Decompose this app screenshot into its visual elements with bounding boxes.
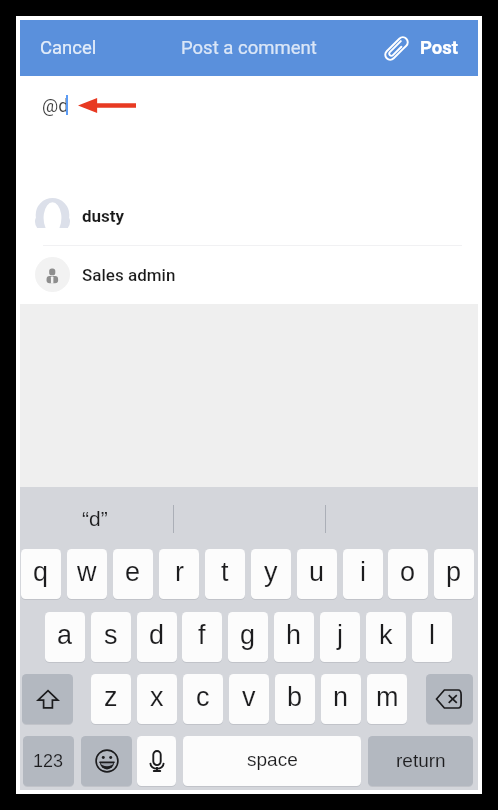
button[interactable]: n [321,674,361,724]
button[interactable]: l [412,612,452,662]
button[interactable]: 123 [23,736,74,786]
button[interactable]: dusty [20,186,478,245]
button[interactable]: a [45,612,85,662]
staticText: space [247,749,298,770]
button[interactable]: m [367,674,407,724]
staticText: e [125,557,141,587]
button[interactable]: q [21,549,61,599]
button[interactable]: Sales admin [20,245,478,304]
staticText: r [175,557,184,587]
staticText: l [429,620,435,650]
staticText: @d [42,95,69,116]
staticText: 123 [33,751,64,771]
staticText: m [376,682,399,712]
staticText: Cancel [40,37,97,59]
staticText: dusty [82,206,125,226]
staticText: t [221,557,229,587]
button[interactable]: Cancel [32,28,105,68]
button[interactable]: Attach file [378,27,466,69]
button[interactable]: x [137,674,177,724]
button[interactable]: g [228,612,268,662]
staticText: j [337,620,343,650]
button[interactable]: j [320,612,360,662]
button[interactable]: “d” [20,487,173,549]
button[interactable]: p [434,549,474,599]
button[interactable]: u [297,549,337,599]
button[interactable]: h [274,612,314,662]
staticText: s [104,620,118,650]
staticText: n [333,682,349,712]
button[interactable]: i [343,549,383,599]
staticText: c [196,682,210,712]
button[interactable]: d [137,612,177,662]
button[interactable]: Dictate [137,736,176,786]
button[interactable]: w [67,549,107,599]
button[interactable]: y [251,549,291,599]
button[interactable]: k [366,612,406,662]
staticText: i [360,557,366,587]
staticText: w [77,557,97,587]
staticText: d [149,620,165,650]
staticText: Post a comment [181,37,317,59]
button[interactable]: e [113,549,153,599]
button[interactable]: b [275,674,315,724]
staticText: “d” [82,507,108,530]
other: Attach file [385,38,408,59]
button[interactable]: f [182,612,222,662]
staticText: z [104,682,118,712]
button[interactable]: o [388,549,428,599]
staticText: a [57,620,73,650]
staticText: f [198,620,206,650]
button[interactable]: z [91,674,131,724]
staticText: q [33,557,49,587]
staticText: x [150,682,164,712]
staticText: return [396,750,446,771]
staticText: h [286,620,302,650]
button[interactable]: t [205,549,245,599]
staticText: o [400,557,416,587]
staticText: u [309,557,325,587]
button[interactable]: Emoji [81,736,132,786]
staticText: y [264,557,278,587]
staticText: v [242,682,256,712]
staticText: b [287,682,303,712]
button[interactable]: r [159,549,199,599]
button[interactable]: return [368,736,473,786]
staticText: k [379,620,393,650]
button[interactable]: Shift [22,674,73,724]
staticText: g [240,620,256,650]
staticText: p [446,557,462,587]
staticText: Post [420,37,459,59]
staticText: Sales admin [82,265,176,285]
button[interactable]: c [183,674,223,724]
button[interactable]: space [183,736,361,786]
button[interactable]: Backspace [426,674,473,724]
button[interactable] [173,487,326,549]
button[interactable]: v [229,674,269,724]
button[interactable]: s [91,612,131,662]
